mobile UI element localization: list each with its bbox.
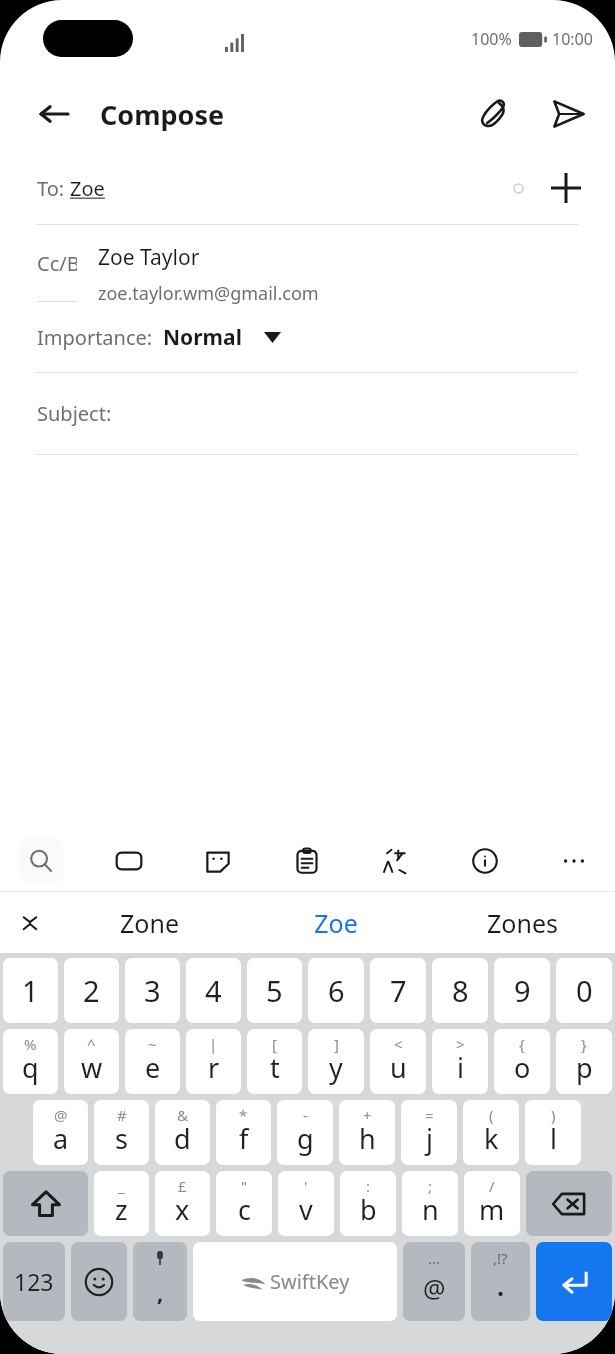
staticText: Zones	[487, 906, 558, 940]
staticText: 2	[83, 971, 100, 1010]
button[interactable]: ]	[308, 1029, 364, 1094]
staticText: Subject:	[37, 400, 112, 427]
button[interactable]: 4	[186, 958, 241, 1023]
staticText: 0	[576, 971, 593, 1010]
button[interactable]: 0	[556, 958, 612, 1023]
button[interactable]: Period	[471, 1242, 530, 1321]
staticText: y	[329, 1049, 343, 1086]
button[interactable]: ~	[125, 1029, 180, 1094]
staticText: v	[299, 1191, 313, 1228]
button[interactable]: Collapse	[10, 903, 50, 943]
button[interactable]: 3	[125, 958, 180, 1023]
staticText: Compose	[100, 96, 225, 133]
button[interactable]: Attach	[465, 87, 519, 141]
button[interactable]: At symbol	[403, 1242, 465, 1321]
staticText: z	[115, 1191, 128, 1228]
button[interactable]: <	[370, 1029, 426, 1094]
button[interactable]: Zone	[56, 892, 243, 953]
button[interactable]: Backspace	[526, 1171, 612, 1236]
staticText: Importance:	[37, 324, 163, 351]
button[interactable]: *	[216, 1100, 271, 1165]
button[interactable]: ^	[64, 1029, 119, 1094]
button[interactable]: Translate	[373, 838, 419, 884]
button[interactable]: _	[94, 1171, 149, 1236]
button[interactable]: =	[401, 1100, 457, 1165]
staticText: :	[366, 1176, 371, 1196]
button[interactable]: &	[155, 1100, 210, 1165]
button[interactable]: More	[551, 838, 597, 884]
button[interactable]: Enter	[536, 1242, 612, 1321]
staticText: =	[425, 1105, 434, 1125]
staticText: 1	[22, 971, 39, 1010]
button[interactable]: Emoji	[71, 1242, 127, 1321]
button[interactable]: Zoe	[243, 892, 429, 953]
staticText: Zoe	[314, 906, 358, 940]
staticText: Zoe Taylor	[98, 243, 200, 272]
button[interactable]: /	[464, 1171, 520, 1236]
staticText: >	[456, 1034, 465, 1054]
button[interactable]: Space	[193, 1242, 397, 1321]
button[interactable]: 1	[3, 958, 58, 1023]
staticText: 3	[144, 971, 161, 1010]
button[interactable]: #	[94, 1100, 149, 1165]
button[interactable]: )	[525, 1100, 581, 1165]
staticText: ;	[428, 1176, 433, 1196]
staticText: ,!?	[493, 1248, 508, 1268]
button[interactable]: Clipboard	[284, 838, 330, 884]
button[interactable]: @	[33, 1100, 88, 1165]
button[interactable]: 123	[3, 1242, 65, 1321]
staticText: ~	[148, 1034, 157, 1054]
button[interactable]: ;	[402, 1171, 458, 1236]
button[interactable]: [	[247, 1029, 302, 1094]
button[interactable]: +	[339, 1100, 395, 1165]
staticText: ]	[334, 1034, 339, 1054]
staticText: .	[497, 1269, 505, 1303]
button[interactable]: 5	[247, 958, 302, 1023]
staticText: {	[519, 1034, 525, 1054]
staticText: a	[53, 1120, 69, 1157]
button[interactable]: (	[463, 1100, 519, 1165]
staticText: w	[81, 1049, 103, 1086]
button[interactable]: }	[556, 1029, 612, 1094]
button[interactable]: "	[216, 1171, 272, 1236]
staticText: zoe.taylor.wm@gmail.com	[98, 281, 319, 306]
staticText: m	[479, 1191, 505, 1228]
button[interactable]: 2	[64, 958, 119, 1023]
button[interactable]: Stickers	[195, 838, 241, 884]
button[interactable]: Zones	[429, 892, 615, 953]
staticText: r	[208, 1049, 220, 1086]
button[interactable]: £	[155, 1171, 210, 1236]
button[interactable]: Shift	[3, 1171, 88, 1236]
button[interactable]: >	[432, 1029, 488, 1094]
staticText: l	[550, 1120, 557, 1157]
staticText: Cc/Bcc:	[37, 250, 105, 277]
staticText: 10:00	[552, 28, 593, 50]
button[interactable]: Add recipient	[539, 161, 593, 215]
button[interactable]: Zoe Taylor	[77, 226, 580, 322]
staticText: d	[174, 1120, 191, 1157]
button[interactable]: Info	[462, 838, 508, 884]
staticText: c	[238, 1191, 251, 1228]
button[interactable]: 6	[308, 958, 364, 1023]
staticText: 100%	[471, 28, 512, 50]
button[interactable]: GIF	[106, 838, 152, 884]
button[interactable]: :	[340, 1171, 396, 1236]
button[interactable]: -	[277, 1100, 333, 1165]
button[interactable]: 7	[370, 958, 426, 1023]
button[interactable]: 9	[494, 958, 550, 1023]
button[interactable]: Back	[28, 88, 80, 140]
staticText: *	[239, 1105, 248, 1125]
button[interactable]: 8	[432, 958, 488, 1023]
button[interactable]: |	[186, 1029, 241, 1094]
button[interactable]: Search	[18, 838, 64, 884]
button[interactable]: {	[494, 1029, 550, 1094]
staticText: @	[54, 1105, 68, 1125]
button[interactable]: '	[278, 1171, 334, 1236]
button[interactable]: Voice input and comma	[133, 1242, 187, 1321]
button[interactable]: %	[3, 1029, 58, 1094]
button[interactable]: Importance:	[0, 302, 615, 372]
staticText: 6	[328, 971, 345, 1010]
button[interactable]: Send	[541, 87, 595, 141]
staticText: e	[145, 1049, 161, 1086]
staticText: %	[24, 1034, 37, 1054]
